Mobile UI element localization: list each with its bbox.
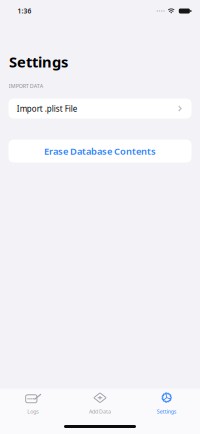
staticText: IMPORT DATA (9, 82, 43, 90)
button[interactable]: Erase Database Contents (8, 140, 191, 163)
staticText: Add Data (89, 408, 111, 415)
staticText: Import .plist File (17, 103, 78, 114)
staticText: Settings (9, 52, 68, 71)
staticText: Settings (157, 408, 177, 415)
staticText: Logs (27, 408, 39, 415)
staticText: Erase Database Contents (44, 145, 156, 157)
button[interactable]: Import .plist File (8, 99, 191, 119)
staticText: 1:36 (17, 7, 31, 15)
button[interactable]: Add Data (67, 386, 133, 417)
button[interactable]: Settings (133, 386, 200, 417)
button[interactable]: Logs (0, 386, 67, 417)
